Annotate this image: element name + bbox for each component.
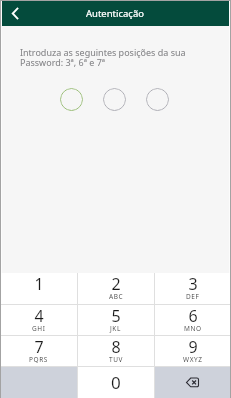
button[interactable]: 2 — [78, 273, 154, 304]
button[interactable]: 0 — [78, 367, 154, 398]
staticText: Introduza as seguintes posições da sua P… — [20, 46, 186, 69]
button[interactable]: Back — [2, 1, 28, 26]
staticText: TUV — [109, 355, 124, 364]
button[interactable]: 4 — [0, 305, 77, 335]
staticText: PQRS — [29, 355, 49, 364]
staticText: 9 — [188, 336, 198, 358]
staticText: 4 — [34, 305, 44, 327]
button[interactable] — [146, 88, 169, 111]
button[interactable]: 7 — [0, 336, 77, 366]
staticText: WXYZ — [183, 355, 203, 364]
staticText: ABC — [109, 292, 124, 301]
staticText: 7 — [34, 336, 44, 358]
staticText: 6 — [188, 305, 198, 327]
staticText: 2 — [111, 273, 121, 295]
button[interactable]: 3 — [155, 273, 231, 304]
button[interactable]: Backspace — [155, 367, 231, 398]
button[interactable]: 9 — [155, 336, 231, 366]
button[interactable]: 6 — [155, 305, 231, 335]
staticText: GHI — [32, 324, 46, 333]
staticText: 5 — [111, 305, 121, 327]
staticText: JKL — [110, 324, 122, 333]
button[interactable] — [103, 88, 126, 111]
staticText: DEF — [186, 292, 200, 301]
button[interactable]: 8 — [78, 336, 154, 366]
staticText: Autenticação — [86, 7, 145, 20]
staticText: 3 — [188, 273, 198, 295]
button[interactable] — [0, 367, 77, 398]
staticText: 0 — [111, 371, 121, 394]
button[interactable] — [60, 88, 83, 111]
button[interactable]: 1 — [0, 273, 77, 304]
staticText: MNO — [184, 324, 202, 333]
button[interactable]: 5 — [78, 305, 154, 335]
staticText: 1 — [34, 273, 44, 295]
staticText: 8 — [111, 336, 121, 358]
